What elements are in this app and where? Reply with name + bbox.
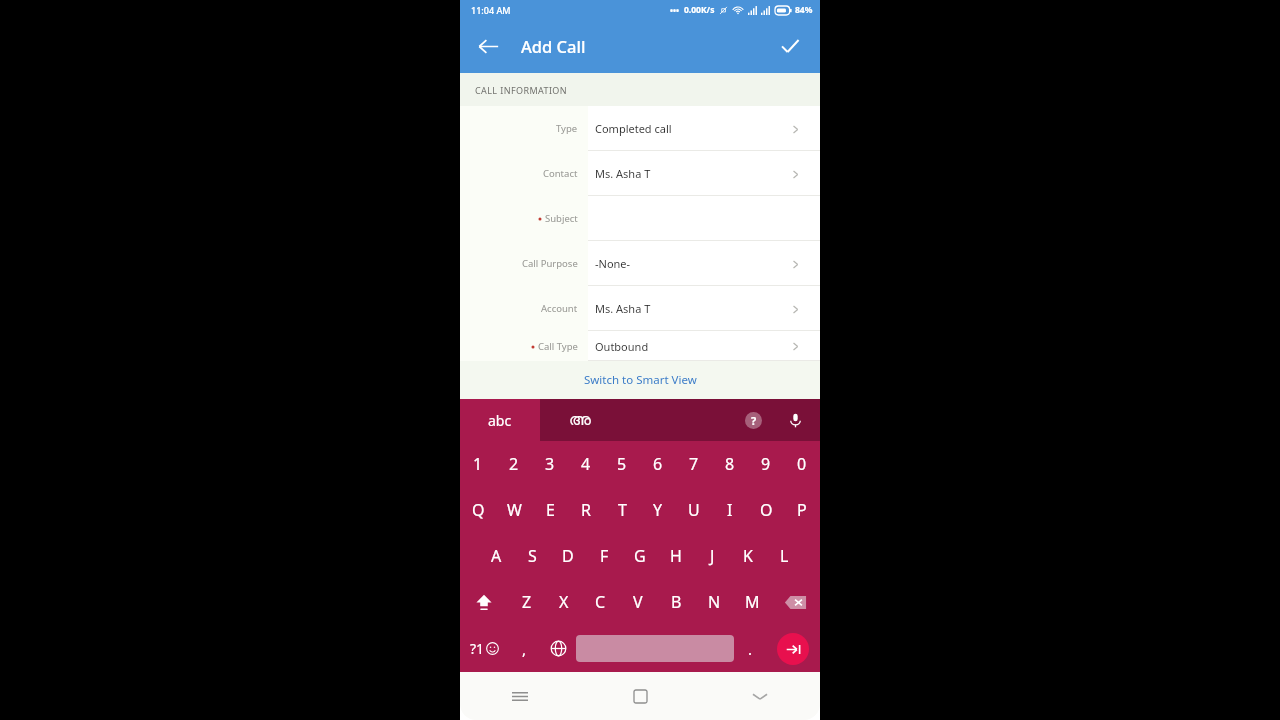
staticText: Call Type [538, 340, 578, 353]
button[interactable]: അ [540, 399, 620, 441]
staticText: G [634, 545, 646, 567]
button[interactable]: R [568, 487, 604, 533]
staticText: I [727, 499, 733, 521]
staticText: S [528, 545, 537, 567]
button[interactable]: Y [640, 487, 676, 533]
staticText: K [743, 545, 753, 567]
button[interactable]: Ms. Asha T [588, 151, 820, 196]
staticText: N [708, 591, 721, 613]
button[interactable]: V [619, 579, 657, 625]
button[interactable]: 5 [604, 441, 640, 487]
staticText: Q [472, 499, 485, 521]
button[interactable]: X [545, 579, 582, 625]
staticText: 2 [509, 453, 519, 475]
button[interactable]: K [730, 533, 766, 579]
button[interactable]: 1 [460, 441, 496, 487]
button[interactable]: H [658, 533, 694, 579]
button[interactable]: U [676, 487, 712, 533]
button[interactable]: A [478, 533, 514, 579]
button[interactable]: J [694, 533, 730, 579]
staticText: ?1 [470, 639, 485, 658]
staticText: A [491, 545, 502, 567]
button[interactable]: B [657, 579, 695, 625]
button[interactable]: abc [460, 399, 540, 441]
button[interactable]: S [514, 533, 550, 579]
button[interactable]: 9 [748, 441, 784, 487]
button[interactable]: 3 [532, 441, 568, 487]
button[interactable]: Recent apps [460, 672, 580, 720]
staticText: Add Call [521, 35, 586, 57]
staticText: B [671, 591, 682, 613]
button[interactable]: Home [580, 672, 700, 720]
staticText: T [618, 499, 627, 521]
button[interactable] [588, 196, 820, 241]
staticText: 84% [795, 4, 813, 16]
button[interactable]: G [622, 533, 658, 579]
button[interactable]: Backspace [771, 579, 820, 625]
button[interactable]: I [712, 487, 748, 533]
button[interactable]: , [508, 625, 540, 672]
button[interactable]: 6 [640, 441, 676, 487]
staticText: V [633, 591, 643, 613]
button[interactable]: Z [508, 579, 545, 625]
button[interactable]: Voice input [773, 399, 817, 441]
button[interactable]: P [784, 487, 820, 533]
staticText: W [507, 499, 522, 521]
button[interactable]: -None- [588, 241, 820, 286]
button[interactable]: Change language [540, 625, 576, 672]
staticText: അ [569, 412, 591, 428]
staticText: -None- [595, 256, 631, 271]
staticText: Y [653, 499, 663, 521]
button[interactable]: O [748, 487, 784, 533]
button[interactable]: Switch to Smart View [460, 361, 820, 399]
button[interactable]: Save [770, 26, 810, 66]
button[interactable]: W [496, 487, 532, 533]
staticText: Completed call [595, 121, 672, 136]
button[interactable]: Hide keyboard [700, 672, 820, 720]
button[interactable]: . [734, 625, 766, 672]
staticText: 9 [761, 453, 771, 475]
staticText: ? [751, 413, 757, 428]
staticText: abc [488, 411, 512, 430]
staticText: CALL INFORMATION [475, 84, 568, 96]
staticText: ••• [670, 5, 680, 16]
staticText: L [780, 545, 789, 567]
staticText: Account [541, 302, 578, 315]
button[interactable]: C [582, 579, 619, 625]
staticText: , [522, 639, 527, 659]
staticText: O [760, 499, 773, 521]
button[interactable]: Ms. Asha T [588, 286, 820, 331]
button[interactable]: D [550, 533, 586, 579]
button[interactable]: Outbound [588, 331, 820, 361]
staticText: 6 [653, 453, 663, 475]
button[interactable]: Enter [766, 625, 820, 672]
button[interactable]: 2 [496, 441, 532, 487]
staticText: Ms. Asha T [595, 301, 651, 316]
button[interactable]: N [695, 579, 733, 625]
button[interactable]: Help [733, 400, 773, 440]
button[interactable]: 4 [568, 441, 604, 487]
button[interactable]: E [532, 487, 568, 533]
staticText: Type [556, 122, 578, 135]
button[interactable]: T [604, 487, 640, 533]
staticText: Outbound [595, 339, 649, 354]
staticText: F [600, 545, 609, 567]
button[interactable]: F [586, 533, 622, 579]
button[interactable]: Shift [460, 579, 508, 625]
staticText: 8 [725, 453, 735, 475]
button[interactable]: Back [468, 26, 508, 66]
button[interactable]: 7 [676, 441, 712, 487]
button[interactable]: M [733, 579, 771, 625]
staticText: 3 [545, 453, 555, 475]
button[interactable]: Q [460, 487, 496, 533]
staticText: R [581, 499, 591, 521]
button[interactable]: 0 [784, 441, 820, 487]
button[interactable]: Space [576, 635, 734, 662]
button[interactable]: Completed call [588, 106, 820, 151]
button[interactable]: 8 [712, 441, 748, 487]
button[interactable]: L [766, 533, 802, 579]
staticText: 7 [689, 453, 699, 475]
staticText: Z [522, 591, 532, 613]
button[interactable]: ?1 [460, 625, 508, 672]
staticText: X [559, 591, 569, 613]
